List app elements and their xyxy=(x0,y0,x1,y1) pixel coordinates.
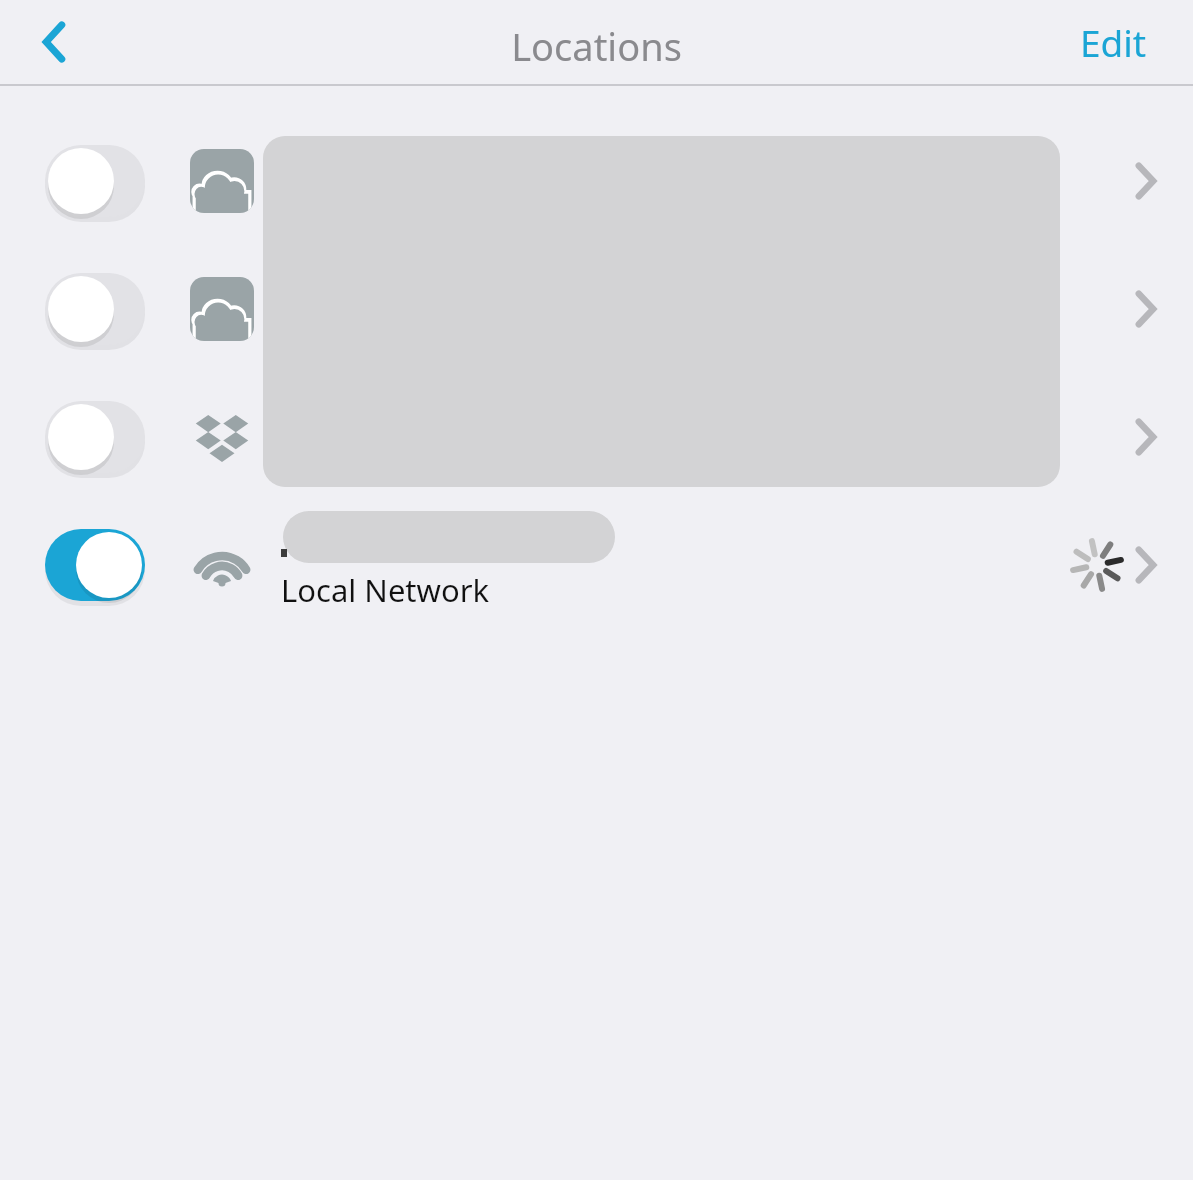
button[interactable]: Cloud location 1 xyxy=(190,149,254,213)
button[interactable]: Dropbox xyxy=(190,405,254,469)
button[interactable]: Dropbox details xyxy=(1110,401,1182,473)
button[interactable]: Dropbox disabled xyxy=(45,401,145,473)
button[interactable]: Back xyxy=(10,2,98,82)
staticText: Edit xyxy=(1080,17,1147,67)
button[interactable]: Edit xyxy=(1043,2,1183,82)
button[interactable]: Local Network details xyxy=(1110,529,1182,601)
button[interactable]: Cloud location 2 xyxy=(190,277,254,341)
other: Syncing xyxy=(1071,539,1123,591)
staticText: Local Network xyxy=(281,569,490,611)
button[interactable]: Local Network xyxy=(190,533,254,597)
button[interactable]: Cloud location 1 disabled xyxy=(45,145,145,217)
button[interactable]: Cloud location 2 details xyxy=(1110,273,1182,345)
button[interactable]: Cloud location 1 details xyxy=(1110,145,1182,217)
button[interactable]: Local Network enabled xyxy=(45,529,145,601)
button[interactable]: Cloud location 2 disabled xyxy=(45,273,145,345)
staticText: Locations xyxy=(0,20,1193,72)
